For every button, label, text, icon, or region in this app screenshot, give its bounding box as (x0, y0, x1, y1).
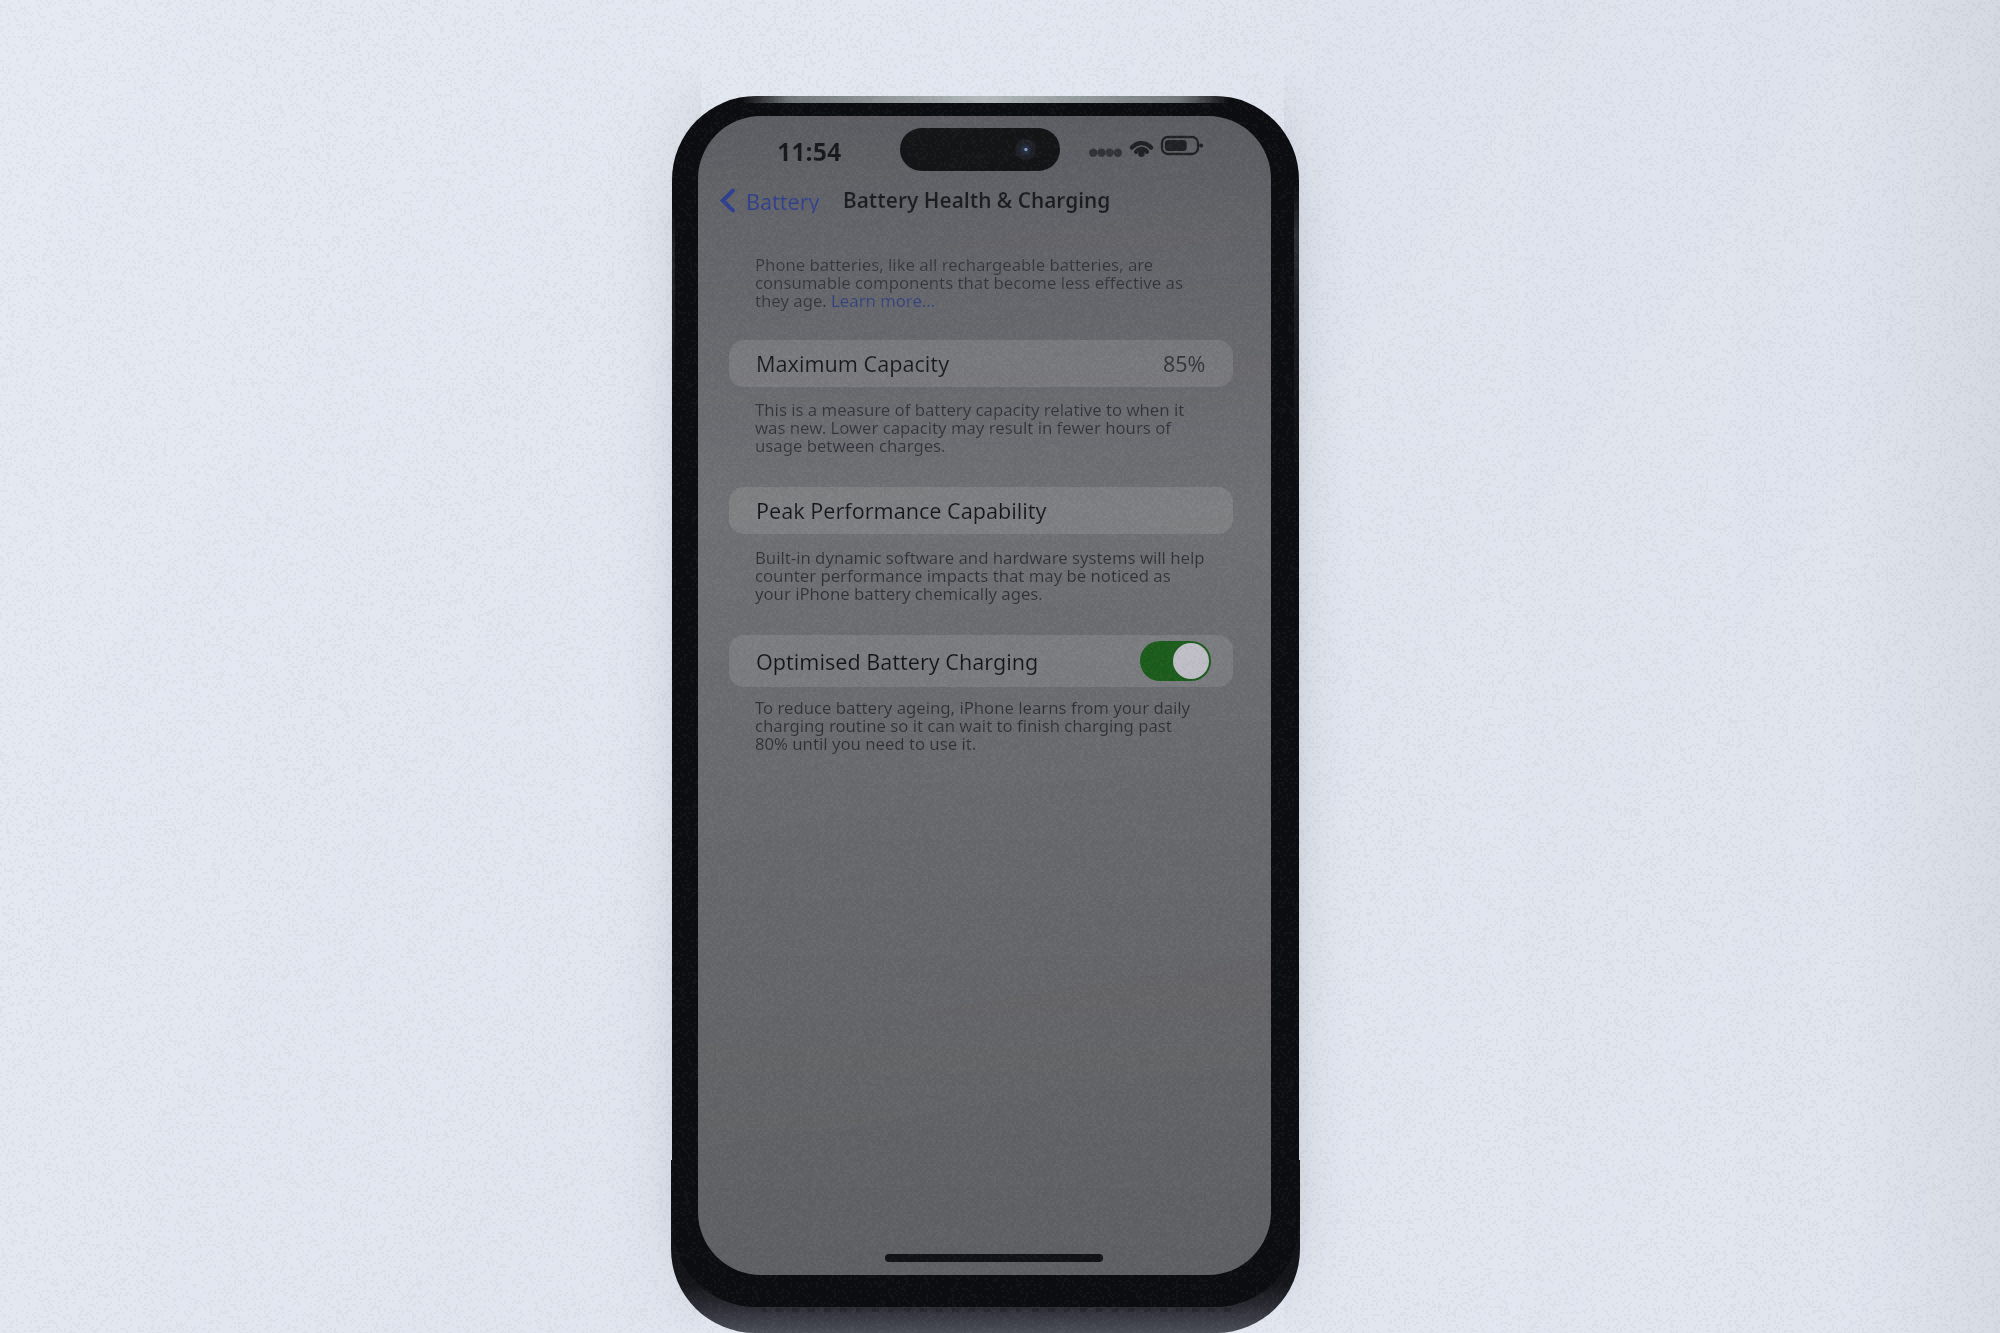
staticText: 11:54 (777, 134, 842, 168)
staticText: Battery (746, 187, 820, 213)
staticText: This is a measure of battery capacity re… (755, 398, 1185, 457)
button[interactable]: Peak Performance Capability (729, 487, 1233, 534)
staticText: Maximum Capacity (756, 349, 950, 378)
button[interactable]: Optimised Battery Charging (729, 635, 1233, 687)
button[interactable]: Battery (715, 182, 825, 218)
button[interactable]: Maximum Capacity (729, 340, 1233, 387)
button[interactable]: Optimised Battery Charging, on (1140, 641, 1211, 681)
staticText: To reduce battery ageing, iPhone learns … (755, 696, 1191, 755)
staticText: Built-in dynamic software and hardware s… (755, 546, 1205, 605)
staticText: Battery Health & Charging (843, 186, 1111, 214)
staticText: Optimised Battery Charging (756, 647, 1039, 676)
staticText: 85% (1163, 349, 1206, 378)
staticText: Peak Performance Capability (756, 496, 1047, 525)
staticText: Phone batteries, like all rechargeable b… (755, 253, 1183, 312)
